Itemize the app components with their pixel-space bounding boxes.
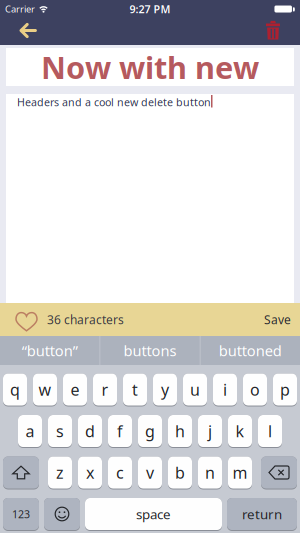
button[interactable]: q bbox=[3, 373, 27, 406]
staticText: e bbox=[70, 379, 79, 400]
staticText: Now with new bbox=[41, 47, 259, 87]
staticText: k bbox=[235, 420, 244, 442]
staticText: i bbox=[223, 379, 227, 400]
button[interactable]: w bbox=[33, 373, 57, 406]
button[interactable]: s bbox=[48, 415, 72, 448]
button[interactable]: Favorite bbox=[0, 303, 47, 336]
button[interactable]: h bbox=[168, 415, 192, 448]
staticText: g bbox=[145, 420, 155, 442]
button[interactable]: n bbox=[198, 456, 222, 489]
staticText: m bbox=[232, 462, 247, 483]
button[interactable]: f bbox=[108, 415, 132, 448]
staticText: space bbox=[136, 505, 171, 523]
button[interactable]: c bbox=[108, 456, 132, 489]
button[interactable]: k bbox=[228, 415, 252, 448]
button[interactable]: e bbox=[63, 373, 87, 406]
staticText: w bbox=[38, 379, 51, 400]
staticText: a bbox=[25, 420, 34, 442]
button[interactable]: x bbox=[78, 456, 102, 489]
staticText: j bbox=[208, 420, 212, 442]
staticText: 9:27 PM bbox=[129, 2, 170, 16]
button[interactable]: Delete bbox=[256, 17, 300, 45]
staticText: “button” bbox=[22, 341, 78, 360]
staticText: u bbox=[190, 379, 200, 400]
button[interactable]: i bbox=[213, 373, 237, 406]
staticText: c bbox=[116, 462, 124, 483]
button[interactable]: a bbox=[18, 415, 42, 448]
button[interactable]: 123 bbox=[3, 498, 39, 531]
button[interactable]: p bbox=[273, 373, 297, 406]
staticText: 36 characters bbox=[47, 311, 124, 327]
button[interactable]: l bbox=[258, 415, 282, 448]
staticText: Headers and a cool new delete button bbox=[17, 95, 211, 109]
button[interactable]: b bbox=[168, 456, 192, 489]
staticText: b bbox=[175, 462, 185, 483]
staticText: Carrier bbox=[5, 3, 35, 15]
button[interactable]: Shift bbox=[3, 456, 39, 489]
staticText: v bbox=[146, 462, 154, 483]
button[interactable]: buttons bbox=[100, 336, 200, 365]
staticText: n bbox=[205, 462, 215, 483]
staticText: f bbox=[117, 420, 123, 442]
button[interactable]: o bbox=[243, 373, 267, 406]
staticText: q bbox=[10, 379, 20, 400]
button[interactable]: Delete bbox=[261, 456, 297, 489]
staticText: 123 bbox=[12, 507, 30, 521]
staticText: Save bbox=[264, 311, 291, 327]
staticText: o bbox=[250, 379, 260, 400]
button[interactable]: j bbox=[198, 415, 222, 448]
staticText: s bbox=[56, 420, 64, 442]
button[interactable]: Emoji bbox=[44, 498, 80, 531]
button[interactable]: m bbox=[228, 456, 252, 489]
staticText: t bbox=[132, 379, 138, 400]
button[interactable]: return bbox=[227, 498, 297, 531]
button[interactable]: Back bbox=[0, 18, 47, 45]
staticText: d bbox=[85, 420, 95, 442]
staticText: l bbox=[268, 420, 272, 442]
button[interactable]: buttoned bbox=[201, 336, 300, 365]
button[interactable]: g bbox=[138, 415, 162, 448]
button[interactable]: v bbox=[138, 456, 162, 489]
button[interactable]: y bbox=[153, 373, 177, 406]
staticText: x bbox=[86, 462, 94, 483]
staticText: z bbox=[56, 462, 64, 483]
button[interactable]: Save bbox=[254, 302, 300, 336]
button[interactable]: z bbox=[48, 456, 72, 489]
button[interactable]: r bbox=[93, 373, 117, 406]
staticText: buttons bbox=[123, 341, 176, 360]
staticText: return bbox=[242, 505, 282, 523]
button[interactable]: t bbox=[123, 373, 147, 406]
button[interactable]: u bbox=[183, 373, 207, 406]
staticText: y bbox=[161, 379, 169, 400]
button[interactable]: “button” bbox=[0, 336, 99, 365]
staticText: p bbox=[280, 379, 290, 400]
staticText: r bbox=[101, 379, 108, 400]
staticText: buttoned bbox=[219, 341, 282, 360]
staticText: h bbox=[175, 420, 185, 442]
button[interactable]: space bbox=[85, 498, 222, 531]
button[interactable]: d bbox=[78, 415, 102, 448]
